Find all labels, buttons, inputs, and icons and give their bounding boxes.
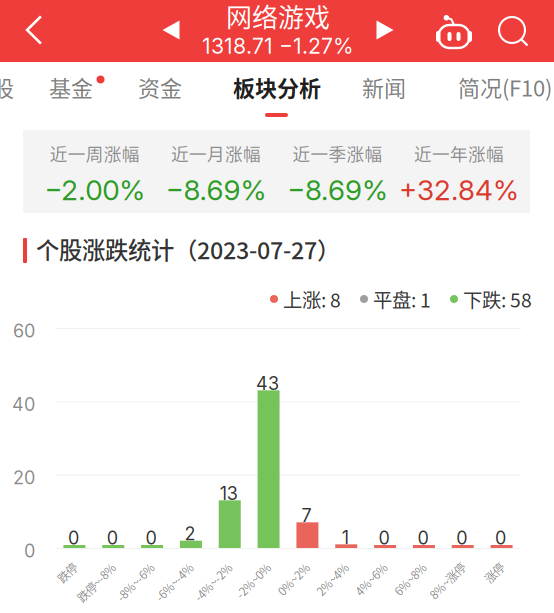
staticText: 资金 [138, 71, 182, 103]
staticText: 6%~8% [384, 557, 424, 573]
staticText: 13 [220, 482, 238, 504]
button[interactable]: Assistant [436, 15, 472, 49]
staticText: 涨停 [480, 557, 502, 573]
staticText: 0 [68, 527, 79, 549]
staticText: 0 [495, 527, 506, 549]
staticText: 上涨: 8 [283, 285, 341, 313]
staticText: -8%~-6% [105, 557, 153, 573]
staticText: -4%~-2% [182, 557, 230, 573]
staticText: -2%~0% [225, 557, 269, 573]
staticText: 20 [13, 467, 35, 489]
staticText: 2 [184, 523, 195, 545]
staticText: 网络游戏 [226, 0, 330, 35]
staticText: 平盘: 1 [373, 285, 431, 313]
staticText: 0 [146, 527, 157, 549]
staticText: 0 [24, 540, 35, 562]
button[interactable]: 个股 [0, 71, 14, 103]
staticText: 60 [13, 320, 35, 342]
button[interactable]: Next [376, 20, 393, 39]
staticText: 近一周涨幅 [50, 140, 140, 166]
staticText: 个股 [0, 71, 14, 103]
staticText: 4%~6% [346, 557, 386, 573]
button[interactable]: 资金 [138, 71, 182, 103]
staticText: 基金 [49, 71, 93, 103]
staticText: 板块分析 [233, 71, 321, 103]
staticText: 近一月涨幅 [171, 140, 261, 166]
staticText: −8.69% [287, 173, 388, 207]
staticText: -6%~-4% [143, 557, 191, 573]
button[interactable]: 新闻 [362, 71, 406, 103]
staticText: 8%~涨停 [418, 557, 463, 573]
staticText: 简况(F10) [458, 71, 552, 103]
staticText: 0 [456, 527, 467, 549]
staticText: 新闻 [362, 71, 406, 103]
staticText: 下跌: 58 [463, 285, 532, 313]
staticText: 近一年涨幅 [414, 140, 504, 166]
staticText: 0 [417, 527, 428, 549]
staticText: −8.69% [166, 173, 267, 207]
button[interactable]: Back [26, 15, 42, 45]
staticText: 2%~4% [307, 557, 347, 573]
staticText: 跌停 [53, 557, 75, 573]
staticText: 40 [12, 393, 35, 415]
staticText: −2.00% [44, 173, 145, 207]
staticText: 0 [107, 527, 118, 549]
staticText: 7 [301, 504, 311, 526]
button[interactable]: Search [499, 17, 529, 47]
staticText: 43 [256, 372, 279, 394]
staticText: 跌停~-8% [65, 557, 114, 573]
button[interactable]: 简况(F10) [458, 71, 552, 103]
staticText: 0%~2% [268, 557, 308, 573]
staticText: 1 [342, 526, 349, 548]
staticText: +32.84% [399, 173, 519, 207]
staticText: 个股涨跌统计（2023-07-27） [36, 232, 340, 266]
staticText: 近一季涨幅 [292, 140, 382, 166]
staticText: 0 [379, 527, 390, 549]
button[interactable]: 基金 [49, 71, 93, 103]
staticText: 1318.71 −1.27% [202, 33, 354, 59]
button[interactable]: 板块分析 [233, 71, 321, 103]
button[interactable]: Previous [162, 20, 179, 39]
